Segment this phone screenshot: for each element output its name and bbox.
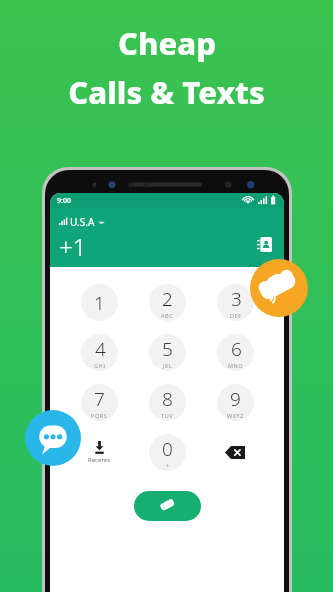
button[interactable]: 7 <box>81 384 118 421</box>
button[interactable]: 0 <box>149 434 186 471</box>
staticText: WXYZ <box>227 412 244 419</box>
staticText: 9 <box>230 386 241 412</box>
staticText: Calls & Texts <box>68 71 265 113</box>
staticText: 2 <box>162 286 173 312</box>
staticText: 1 <box>94 290 105 316</box>
button[interactable]: 6 <box>217 334 254 371</box>
button[interactable]: Contacts <box>253 233 275 255</box>
staticText: GHI <box>94 362 106 369</box>
button[interactable]: Backspace <box>201 431 269 474</box>
staticText: PQRS <box>91 412 108 419</box>
staticText: 6 <box>231 336 242 362</box>
button[interactable]: 5 <box>149 334 186 371</box>
button[interactable]: 9 <box>217 384 254 421</box>
staticText: JKL <box>163 362 173 369</box>
button[interactable]: 3 <box>217 284 254 321</box>
staticText: + <box>166 462 170 470</box>
staticText: 9:00 <box>57 196 71 206</box>
staticText: DEF <box>230 312 242 319</box>
staticText: +1 <box>59 230 87 263</box>
button[interactable]: 2 <box>149 284 186 321</box>
staticText: 4 <box>95 336 106 362</box>
staticText: 8 <box>162 386 173 412</box>
staticText: 0 <box>162 436 173 462</box>
staticText: 5 <box>162 336 173 362</box>
staticText: ABC <box>161 312 174 319</box>
button[interactable]: Recents <box>65 431 133 474</box>
staticText: Cheap <box>118 22 216 64</box>
staticText: TUV <box>161 412 174 419</box>
staticText: U.S.A <box>70 215 95 229</box>
staticText: MNO <box>228 362 244 369</box>
button[interactable]: Call <box>134 491 201 521</box>
button[interactable]: 1 <box>81 284 118 321</box>
button[interactable]: U.S.A <box>59 215 105 229</box>
button[interactable]: Messages <box>25 410 81 466</box>
staticText: 3 <box>231 286 242 312</box>
button[interactable]: 4 <box>81 334 118 371</box>
staticText: Recents <box>88 456 111 464</box>
button[interactable]: Call <box>250 259 308 317</box>
staticText: 7 <box>94 386 105 412</box>
button[interactable]: 8 <box>149 384 186 421</box>
